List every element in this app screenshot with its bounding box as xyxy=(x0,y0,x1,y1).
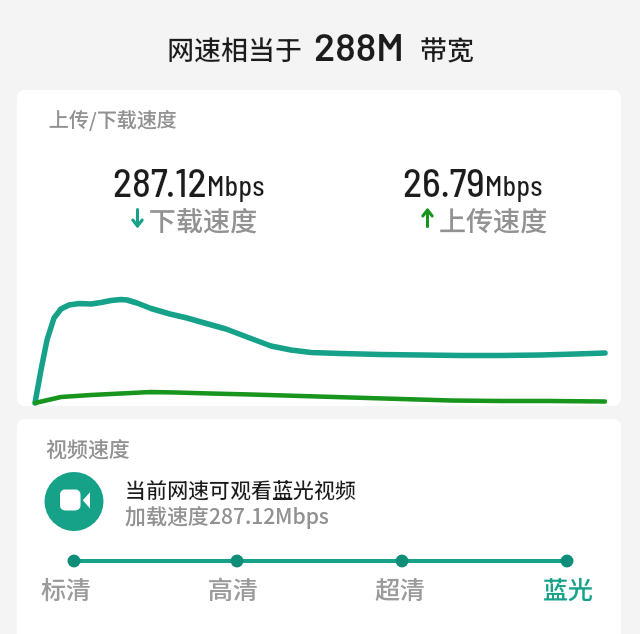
staticText: 标清 xyxy=(41,570,92,606)
staticText: 287.12 xyxy=(113,157,207,204)
staticText: 网速相当于 xyxy=(167,29,302,68)
staticText: 蓝光 xyxy=(543,570,594,606)
staticText: 下载速度 xyxy=(149,200,257,239)
staticText: 高清 xyxy=(208,570,259,606)
button[interactable] xyxy=(44,472,104,532)
staticText: 26.79 xyxy=(403,157,485,204)
button[interactable]: 超清 xyxy=(360,570,440,606)
staticText: 上传速度 xyxy=(439,200,547,239)
button[interactable]: 标清 xyxy=(26,570,106,606)
staticText: 288M xyxy=(314,22,404,68)
staticText: 带宽 xyxy=(420,29,474,68)
staticText: 视频速度 xyxy=(46,433,130,463)
button[interactable]: 当前网速可观看蓝光视频 xyxy=(125,474,356,504)
staticText: 上传/下载速度 xyxy=(49,104,177,133)
staticText: Mbps xyxy=(207,168,265,202)
button[interactable]: 高清 xyxy=(193,570,273,606)
staticText: 超清 xyxy=(375,570,426,606)
staticText: Mbps xyxy=(485,168,543,202)
button[interactable]: 蓝光 xyxy=(528,570,608,606)
staticText: 加载速度287.12Mbps xyxy=(125,500,329,530)
